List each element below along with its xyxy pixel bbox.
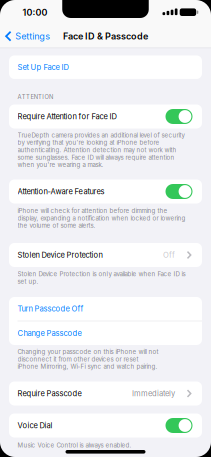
button[interactable]: Set Up Face ID <box>9 55 202 79</box>
staticText: Off <box>163 250 175 260</box>
button[interactable]: Require Passcode <box>9 381 202 405</box>
staticText: disconnect it from other devices or rese… <box>17 355 138 363</box>
button[interactable]: Turn Passcode Off <box>9 297 202 321</box>
button[interactable]: Change Passcode <box>9 321 202 345</box>
staticText: Face ID & Passcode <box>63 31 148 42</box>
staticText: when you're wearing a mask. <box>17 161 103 168</box>
staticText: Stolen Device Protection <box>17 250 102 260</box>
staticText: Settings <box>15 31 50 42</box>
staticText: Stolen Device Protection is only availab… <box>17 270 185 278</box>
staticText: ATTENTION <box>17 93 53 100</box>
staticText: iPhone will check for attention before d… <box>17 207 167 214</box>
staticText: set up. <box>17 278 38 285</box>
staticText: Attention-Aware Features <box>17 187 104 196</box>
staticText: Require Passcode <box>17 389 81 398</box>
staticText: Turn Passcode Off <box>17 304 83 313</box>
staticText: display, expanding a notification when l… <box>17 214 185 222</box>
staticText: the volume of some alerts. <box>17 222 95 229</box>
staticText: iPhone Mirroring, Wi-Fi sync and watch p… <box>17 363 157 370</box>
staticText: authenticating. Attention detection may … <box>17 146 176 154</box>
staticText: Require Attention for Face ID <box>17 112 116 121</box>
button[interactable]: Voice Dial, on <box>9 413 202 437</box>
button[interactable]: Require Attention for Face ID, on <box>9 104 202 128</box>
staticText: 10:00 <box>22 7 47 18</box>
staticText: Voice Dial <box>17 421 52 430</box>
staticText: Immediately <box>132 389 175 398</box>
staticText: TrueDepth camera provides an additional … <box>17 131 184 139</box>
staticText: Music Voice Control is always enabled. <box>17 441 131 449</box>
button[interactable]: Attention-Aware Features, on <box>9 179 202 203</box>
button[interactable]: Stolen Device Protection <box>9 243 202 267</box>
staticText: Changing your passcode on this iPhone wi… <box>17 348 158 355</box>
staticText: Set Up Face ID <box>17 63 68 72</box>
staticText: Change Passcode <box>17 329 81 338</box>
button[interactable]: Back to Settings <box>5 27 85 45</box>
staticText: by verifying that you're looking at iPho… <box>17 139 159 146</box>
staticText: some sunglasses. Face ID will always req… <box>17 154 174 161</box>
